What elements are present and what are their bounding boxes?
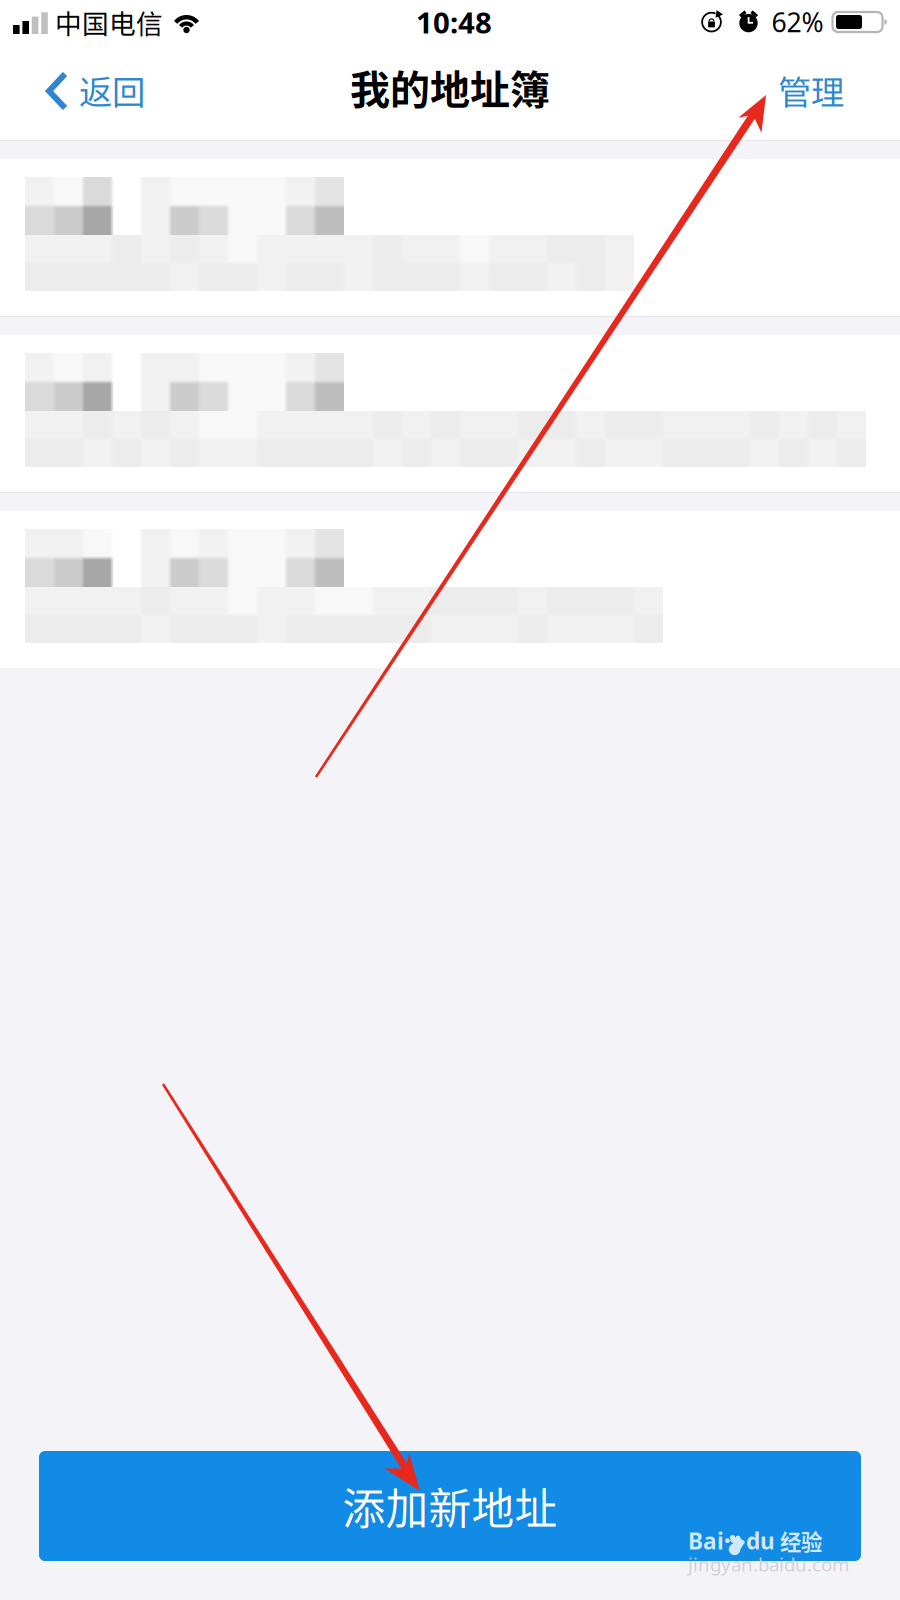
staticText: 添加新地址 <box>342 1475 557 1537</box>
button[interactable] <box>0 335 900 492</box>
button[interactable] <box>0 159 900 316</box>
button[interactable]: 返回 <box>0 44 169 140</box>
button[interactable] <box>0 511 900 668</box>
button[interactable]: 添加新地址 <box>39 1451 861 1561</box>
staticText: 10:48 <box>416 2 492 42</box>
staticText: du <box>746 1525 775 1556</box>
staticText: Bai <box>688 1525 724 1556</box>
staticText: 经验 <box>780 1525 822 1556</box>
staticText: 返回 <box>79 66 145 114</box>
staticText: 中国电信 <box>55 3 163 41</box>
staticText: 62% <box>771 4 823 40</box>
button[interactable]: 管理 <box>750 44 900 140</box>
staticText: 我的地址簿 <box>350 58 550 116</box>
staticText: jingyan.baidu.com <box>688 1552 849 1577</box>
staticText: 管理 <box>778 66 844 114</box>
